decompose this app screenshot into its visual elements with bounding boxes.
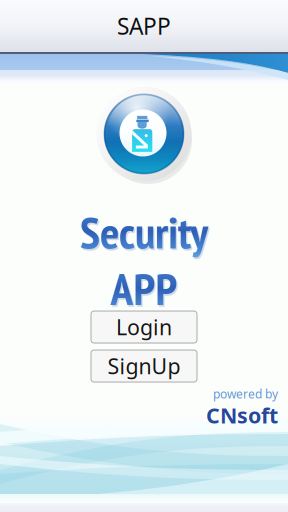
button[interactable]: Login bbox=[91, 311, 197, 343]
staticText: APP bbox=[112, 260, 179, 319]
staticText: SAPP bbox=[117, 11, 171, 41]
staticText: CNsoft bbox=[206, 401, 278, 429]
staticText: Security bbox=[81, 204, 209, 263]
staticText: powered by bbox=[213, 386, 278, 402]
button[interactable]: SignUp bbox=[91, 350, 197, 382]
staticText: Login bbox=[116, 313, 172, 341]
staticText: SignUp bbox=[107, 352, 180, 380]
